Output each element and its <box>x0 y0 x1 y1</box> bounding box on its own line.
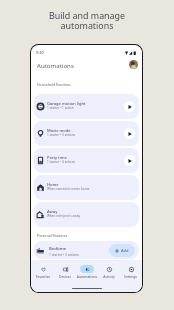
button[interactable]: Home <box>34 175 139 200</box>
staticText: When everyone's away <box>47 214 80 218</box>
staticText: 1 starter • 3 actions <box>49 252 79 256</box>
button[interactable]: Away <box>34 202 139 227</box>
staticText: Party time <box>47 155 67 160</box>
staticText: Favorites <box>32 274 54 279</box>
button[interactable]: Bedtime <box>34 241 139 259</box>
button[interactable]: Favorites <box>32 265 54 279</box>
staticText: Personal Routines <box>37 233 68 238</box>
staticText: Home <box>47 182 59 187</box>
staticText: Automations <box>37 61 74 69</box>
staticText: Automations <box>76 274 98 279</box>
button[interactable]: Play routine <box>124 101 135 112</box>
button[interactable]: Devices <box>54 265 76 279</box>
button[interactable]: Automations <box>76 265 98 279</box>
button[interactable]: Garage motion light <box>34 94 139 119</box>
button[interactable]: Play routine <box>124 128 135 139</box>
staticText: Add <box>121 248 129 253</box>
staticText: Bedtime <box>49 245 67 251</box>
staticText: 1 starter • 4 actions <box>47 160 76 164</box>
staticText: Away <box>47 209 58 214</box>
staticText: Build and manage automations <box>0 9 174 32</box>
button[interactable]: Party time <box>34 148 139 173</box>
button[interactable]: Add <box>109 244 135 257</box>
button[interactable]: Play routine <box>124 155 135 166</box>
staticText: 1 starter • 1 action <box>47 106 74 110</box>
button[interactable]: Movie mode <box>34 121 139 146</box>
staticText: 9:30 <box>36 50 44 55</box>
staticText: Devices <box>54 274 76 279</box>
staticText: Garage motion light <box>47 101 86 106</box>
button[interactable]: Settings <box>120 265 141 279</box>
staticText: Movie mode <box>47 128 71 133</box>
staticText: Household Routines <box>37 82 71 87</box>
staticText: Settings <box>120 274 141 279</box>
button[interactable]: Activity <box>98 265 120 279</box>
staticText: 1 starter • 3 actions <box>47 133 76 137</box>
staticText: Activity <box>98 274 120 279</box>
button[interactable]: Account <box>129 60 138 69</box>
staticText: When someone comes home <box>47 187 90 191</box>
